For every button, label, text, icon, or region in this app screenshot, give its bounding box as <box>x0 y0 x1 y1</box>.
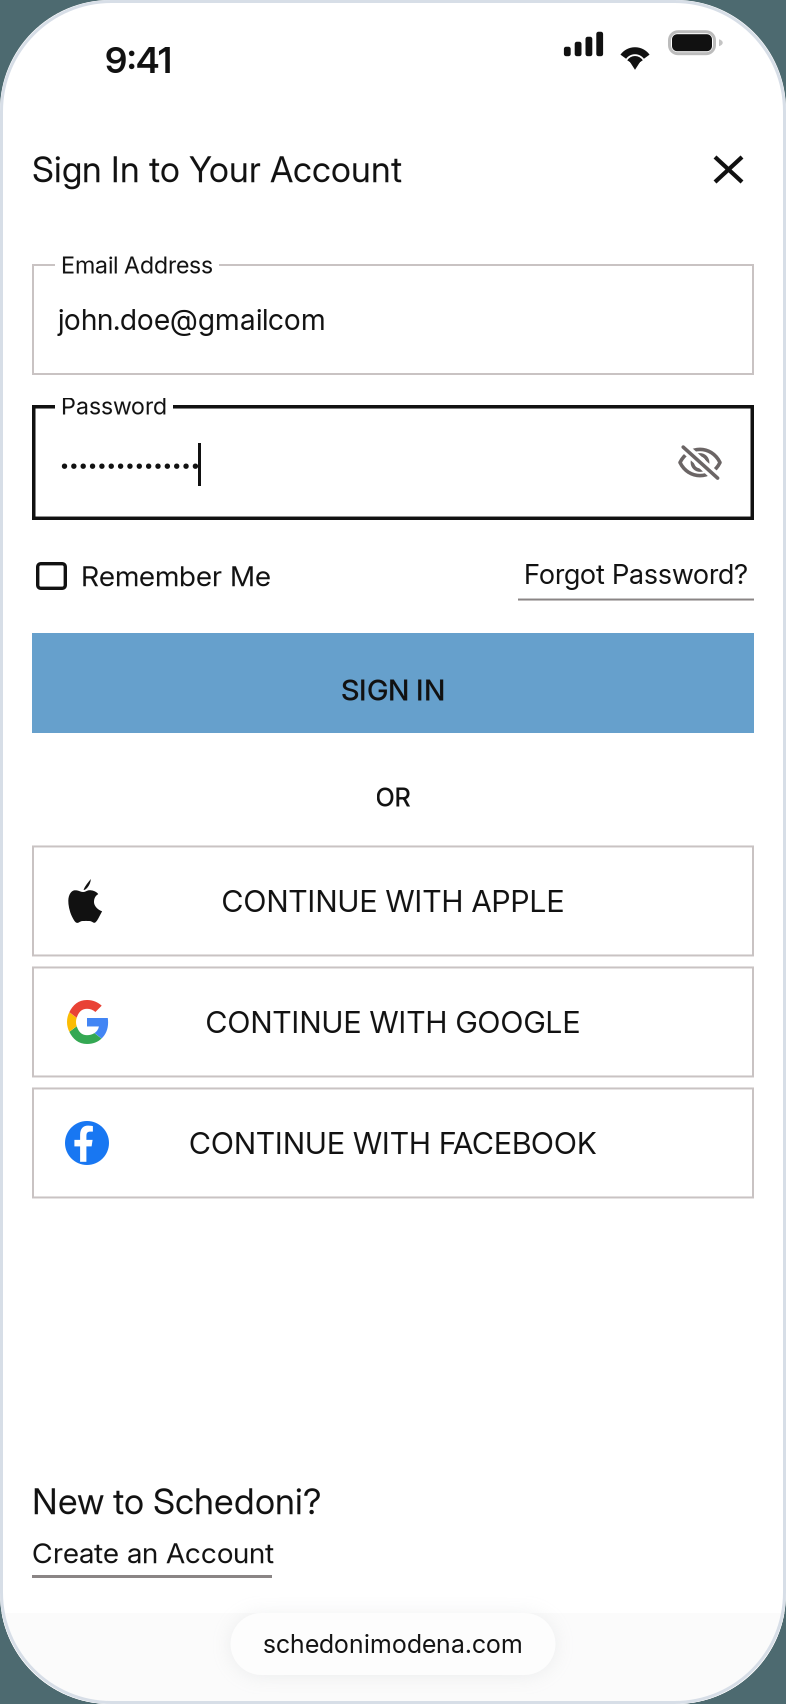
staticText: CONTINUE WITH FACEBOOK <box>189 1125 597 1161</box>
button[interactable]: SIGN IN <box>32 633 754 733</box>
staticText: Forgot Password? <box>524 557 748 591</box>
staticText: New to Schedoni? <box>32 1480 321 1523</box>
staticText: Create an Account <box>32 1536 274 1570</box>
button[interactable]: Close <box>699 141 758 198</box>
staticText: CONTINUE WITH APPLE <box>221 883 564 919</box>
button[interactable]: Forgot Password? <box>518 554 754 598</box>
staticText: Password <box>61 392 167 420</box>
button[interactable]: Remember Me <box>32 559 271 593</box>
staticText: CONTINUE WITH GOOGLE <box>205 1004 580 1040</box>
staticText: 9:41 <box>105 38 172 82</box>
button[interactable]: CONTINUE WITH FACEBOOK <box>32 1087 754 1198</box>
staticText: SIGN IN <box>341 672 445 707</box>
staticText: Remember Me <box>81 559 271 593</box>
button[interactable]: CONTINUE WITH APPLE <box>32 845 754 956</box>
staticText: schedonimodena.com <box>263 1629 523 1659</box>
staticText: Email Address <box>61 251 213 279</box>
staticText: john.doe@gmailcom <box>58 302 326 337</box>
button[interactable]: Create an Account <box>32 1536 274 1578</box>
staticText: Sign In to Your Account <box>32 148 402 191</box>
staticText: OR <box>375 782 410 812</box>
button[interactable]: CONTINUE WITH GOOGLE <box>32 966 754 1077</box>
